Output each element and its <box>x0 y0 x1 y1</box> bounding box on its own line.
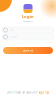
staticText: Welcome back <box>23 21 33 22</box>
staticText: Login <box>22 14 34 19</box>
staticText: SIGN IN <box>23 49 33 52</box>
button[interactable]: Don't have an account? <box>0 90 56 95</box>
button[interactable]: SIGN IN <box>3 47 53 54</box>
staticText: Sign Up <box>38 91 49 94</box>
staticText: Don't have an account? <box>6 91 37 94</box>
staticText: Forgot? <box>46 41 52 43</box>
button[interactable]: Forgot? <box>36 40 52 43</box>
